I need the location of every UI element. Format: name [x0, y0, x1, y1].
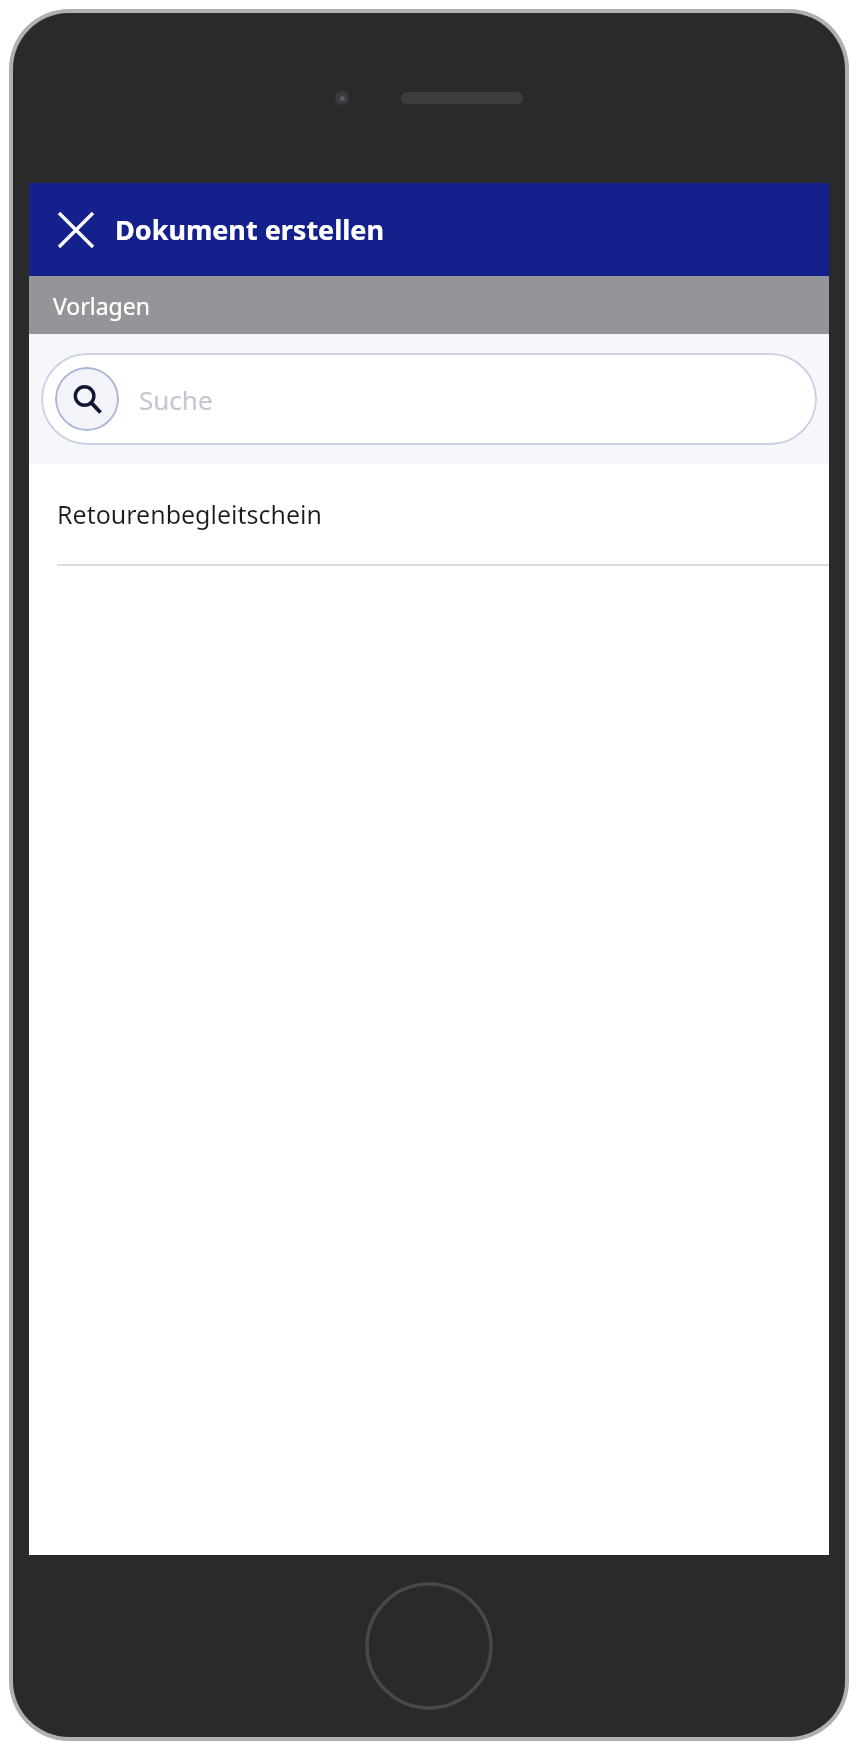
button[interactable]: Suche	[41, 353, 817, 445]
button[interactable]: Schließen	[49, 203, 103, 257]
button[interactable]: Retourenbegleitschein	[29, 464, 829, 564]
staticText: Retourenbegleitschein	[57, 497, 322, 531]
staticText: Suche	[139, 382, 213, 417]
staticText: Dokument erstellen	[115, 211, 385, 248]
staticText: Vorlagen	[53, 290, 150, 321]
